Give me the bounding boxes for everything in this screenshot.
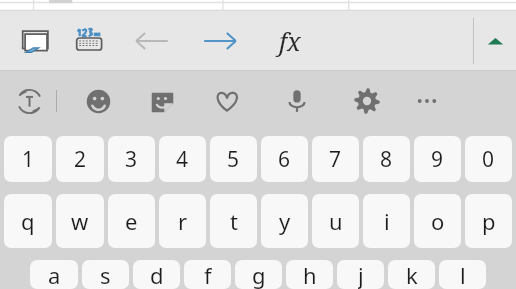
button[interactable]: j: [337, 260, 384, 289]
button[interactable]: t: [210, 194, 257, 248]
staticText: l: [460, 260, 466, 289]
staticText: 3: [125, 145, 138, 174]
button[interactable]: Stickers: [140, 79, 184, 123]
button[interactable]: k: [388, 260, 435, 289]
button[interactable]: 8: [363, 136, 410, 182]
button[interactable]: 3: [108, 136, 155, 182]
button[interactable]: u: [312, 194, 359, 248]
staticText: d: [150, 260, 164, 289]
staticText: 7: [329, 145, 342, 174]
button[interactable]: o: [414, 194, 461, 248]
button[interactable]: 6: [261, 136, 308, 182]
staticText: 2: [74, 145, 87, 174]
button[interactable]: h: [286, 260, 333, 289]
button[interactable]: 4: [159, 136, 206, 182]
button[interactable]: Expand formula bar: [474, 11, 516, 71]
staticText: fx: [279, 24, 301, 58]
button[interactable]: Previous cell: [128, 17, 176, 65]
button[interactable]: More options: [405, 79, 449, 123]
staticText: 6: [278, 145, 291, 174]
staticText: f: [204, 260, 212, 289]
staticText: u: [329, 206, 343, 236]
staticText: a: [48, 260, 61, 289]
button[interactable]: w: [56, 194, 104, 248]
staticText: 1: [22, 145, 35, 174]
button[interactable]: p: [465, 194, 512, 248]
staticText: 9: [431, 145, 444, 174]
button[interactable]: l: [439, 260, 486, 289]
button[interactable]: 2: [56, 136, 104, 182]
staticText: i: [384, 206, 390, 236]
staticText: q: [21, 206, 35, 236]
button[interactable]: e: [108, 194, 155, 248]
staticText: y: [279, 206, 291, 236]
button[interactable]: 9: [414, 136, 461, 182]
staticText: 5: [227, 145, 240, 174]
button[interactable]: Number keyboard: [66, 18, 112, 64]
button[interactable]: Voice input: [275, 79, 319, 123]
staticText: w: [71, 206, 89, 236]
button[interactable]: d: [133, 260, 180, 289]
staticText: t: [230, 206, 238, 236]
button[interactable]: g: [235, 260, 282, 289]
button[interactable]: 1: [4, 136, 52, 182]
button[interactable]: q: [4, 194, 52, 248]
button[interactable]: i: [363, 194, 410, 248]
button[interactable]: s: [82, 260, 129, 289]
button[interactable]: f: [184, 260, 231, 289]
button[interactable]: 5: [210, 136, 257, 182]
button[interactable]: Translate: [7, 79, 51, 123]
button[interactable]: Select sheet: [12, 18, 58, 64]
staticText: p: [482, 206, 496, 236]
staticText: o: [431, 206, 445, 236]
staticText: r: [178, 206, 188, 236]
staticText: 8: [380, 145, 393, 174]
staticText: j: [358, 260, 364, 289]
staticText: 4: [176, 145, 189, 174]
button[interactable]: Next cell: [196, 17, 244, 65]
button[interactable]: a: [30, 260, 78, 289]
button[interactable]: Insert function: [266, 17, 314, 65]
button[interactable]: Keyboard settings: [345, 79, 389, 123]
button[interactable]: Emoji: [76, 79, 120, 123]
staticText: g: [252, 260, 266, 289]
button[interactable]: 7: [312, 136, 359, 182]
staticText: s: [100, 260, 111, 289]
button[interactable]: GIF: [205, 79, 249, 123]
button[interactable]: y: [261, 194, 308, 248]
button[interactable]: 0: [465, 136, 512, 182]
staticText: k: [406, 260, 418, 289]
staticText: h: [303, 260, 317, 289]
staticText: 0: [482, 145, 495, 174]
button[interactable]: r: [159, 194, 206, 248]
staticText: e: [125, 206, 138, 236]
